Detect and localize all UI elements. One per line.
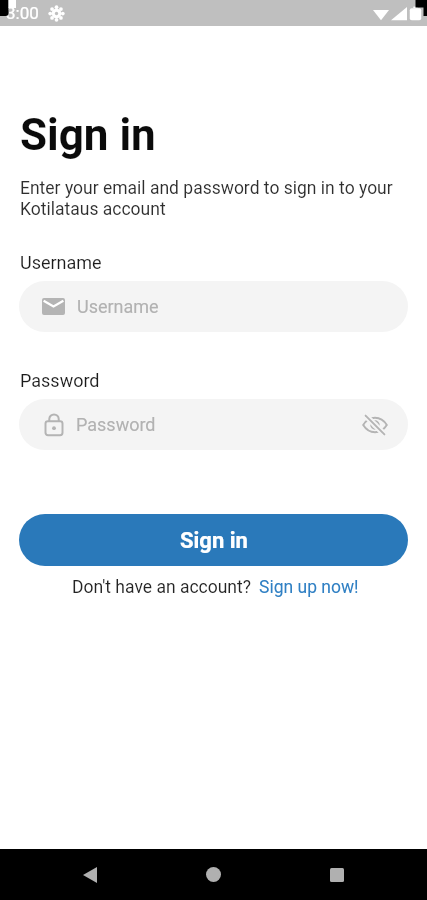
button[interactable]: Show password [361, 411, 389, 439]
button[interactable]: Sign up now! [259, 577, 359, 598]
button[interactable]: Back [64, 849, 115, 900]
staticText: Sign up now! [259, 577, 359, 598]
staticText: Password [20, 370, 100, 391]
staticText: Sign in [20, 109, 156, 161]
staticText: 3:00 [6, 3, 39, 23]
button[interactable]: Recents [311, 849, 362, 900]
button[interactable]: Sign in [19, 514, 408, 566]
staticText: Password [76, 414, 156, 435]
button[interactable]: Username [19, 281, 408, 332]
staticText: Username [20, 252, 102, 273]
staticText: Username [77, 296, 159, 317]
staticText: Enter your email and password to sign in… [20, 178, 402, 220]
button[interactable]: Home [188, 849, 239, 900]
button[interactable]: Password [19, 399, 408, 450]
staticText: Sign in [180, 528, 248, 554]
staticText: Don't have an account? [72, 577, 252, 598]
